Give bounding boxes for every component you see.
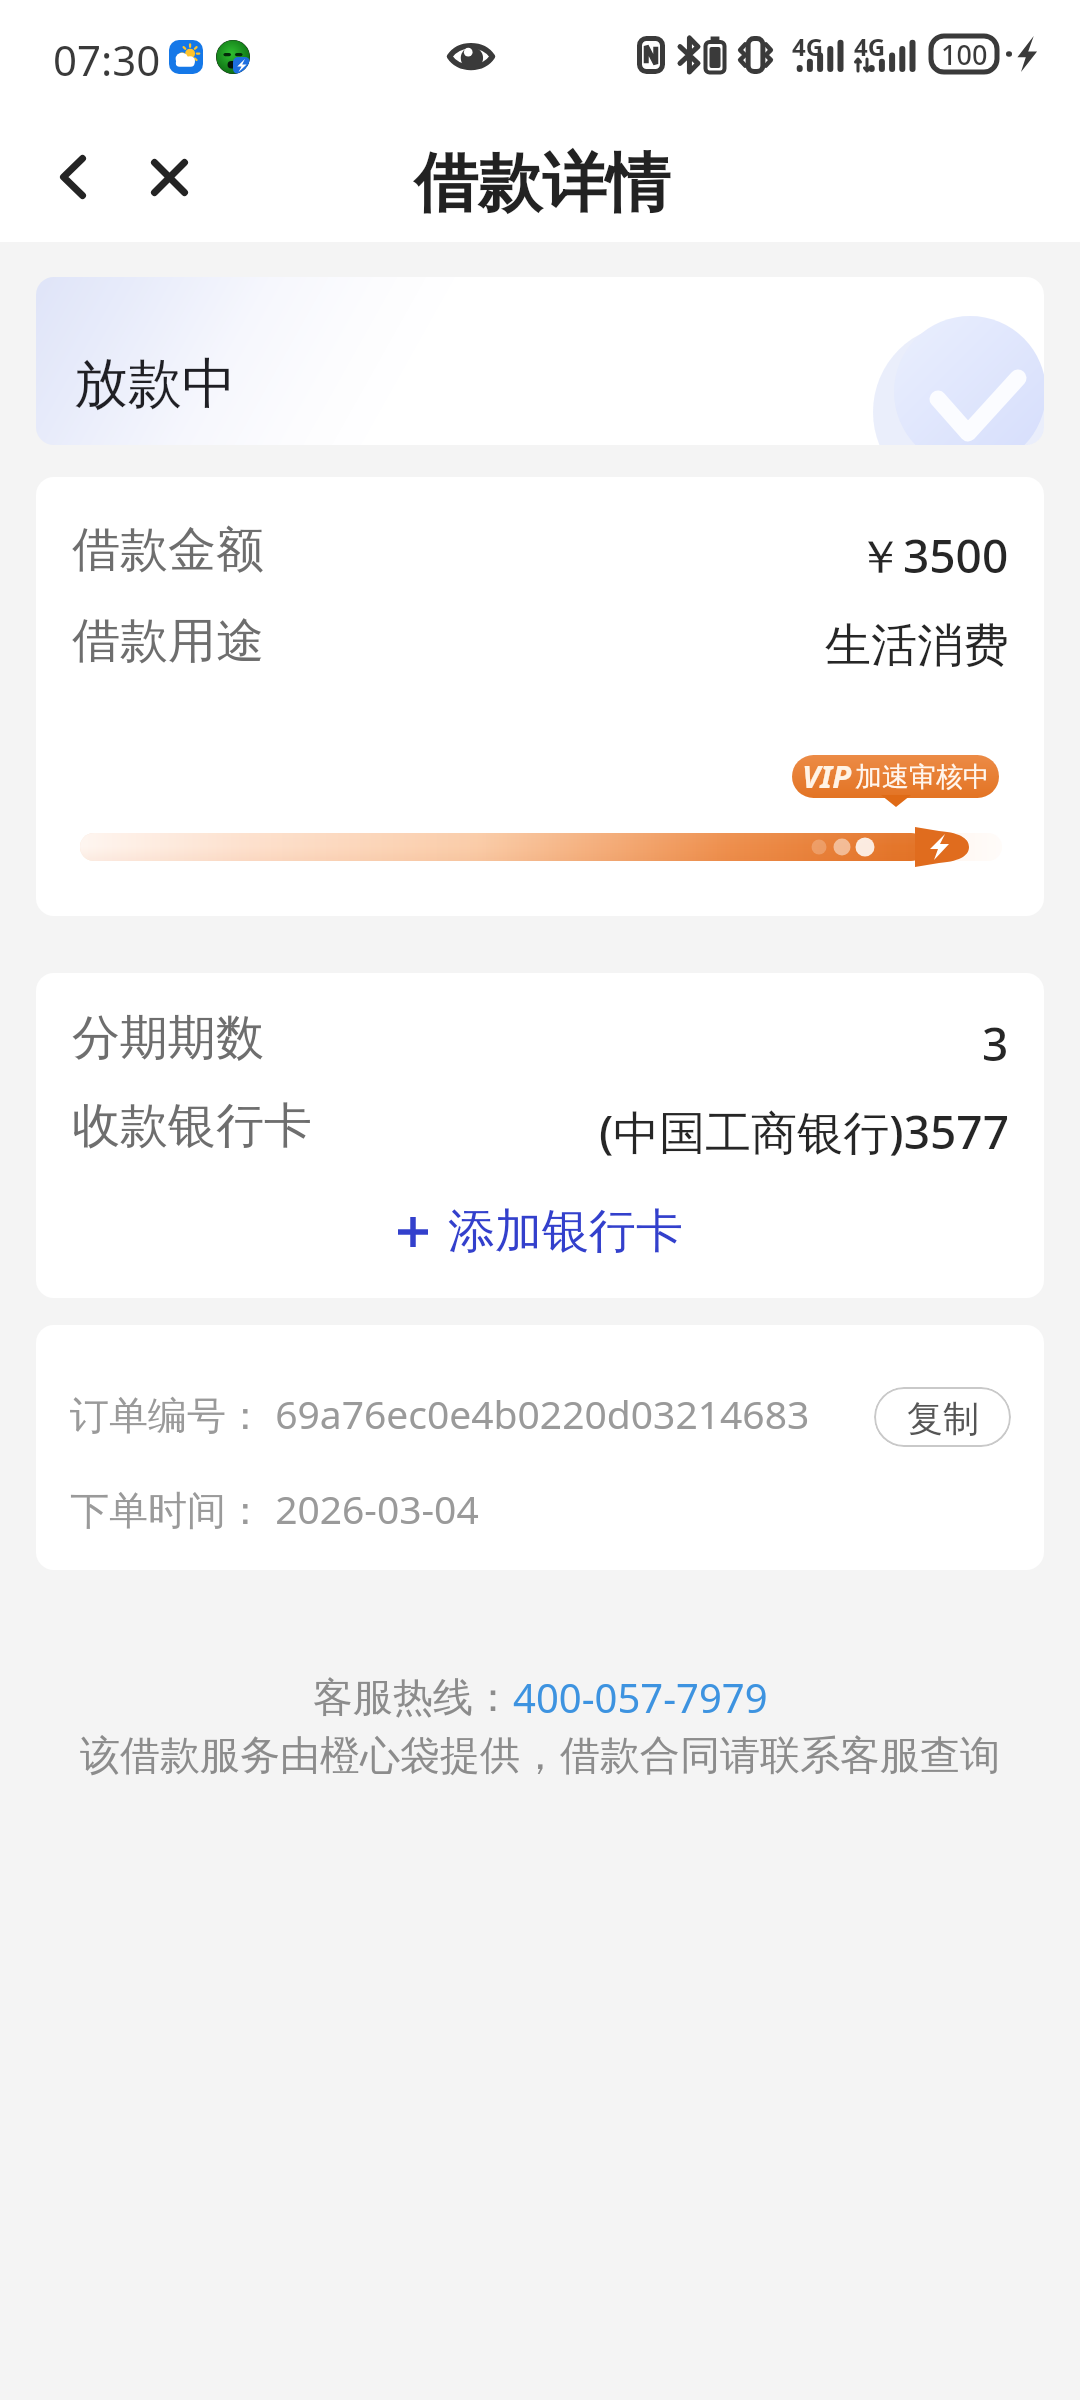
staticText: ￥3500 <box>857 524 1009 586</box>
staticText: 3 <box>982 1012 1009 1074</box>
staticText: 下单时间： 2026-03-04 <box>70 1482 479 1535</box>
staticText: 收款银行卡 <box>72 1096 312 1156</box>
button[interactable]: Close <box>129 137 209 217</box>
button[interactable]: 添加银行卡 <box>36 1195 1044 1267</box>
staticText: 100 <box>941 36 988 73</box>
staticText: 07:30 <box>53 31 161 88</box>
staticText: 加速审核中 <box>855 760 990 794</box>
staticText: VIP <box>802 755 852 797</box>
staticText: (中国工商银行)3577 <box>599 1100 1009 1162</box>
staticText: 放款中 <box>74 350 236 418</box>
staticText: 400-057-7979 <box>513 1670 768 1724</box>
staticText: 借款金额 <box>72 520 264 580</box>
staticText: 4G <box>792 30 824 63</box>
staticText: 借款详情 <box>414 143 670 224</box>
staticText: 4G <box>854 30 886 63</box>
staticText: 生活消费 <box>825 617 1009 675</box>
staticText: 借款用途 <box>72 611 264 671</box>
staticText: 复制 <box>907 1396 979 1441</box>
staticText: 该借款服务由橙心袋提供，借款合同请联系客服查询 <box>80 1730 1000 1780</box>
staticText: 添加银行卡 <box>448 1202 683 1261</box>
staticText: 订单编号： 69a76ec0e4b0220d03214683 <box>70 1387 810 1440</box>
staticText: 分期期数 <box>72 1008 264 1068</box>
button[interactable]: 复制 <box>874 1387 1011 1447</box>
staticText: 客服热线： <box>313 1672 513 1722</box>
button[interactable]: Back <box>33 137 113 217</box>
